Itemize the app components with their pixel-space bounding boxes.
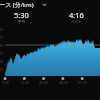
staticText: 53:20 (78, 80, 88, 85)
staticText: 6:30 (0, 59, 4, 64)
staticText: ベスト (71, 20, 83, 25)
staticText: 5:00 (0, 35, 4, 40)
staticText: 13:20 (20, 80, 30, 85)
button[interactable]: ペース (分/km) (0, 0, 100, 11)
staticText: 5:30 (14, 10, 29, 20)
staticText: 4:16 (69, 10, 84, 20)
staticText: 0:00 (2, 80, 10, 85)
staticText: 4:30 (0, 27, 4, 32)
staticText: 6:00 (0, 51, 4, 56)
staticText: 7:00 (0, 67, 4, 72)
staticText: 平均 (18, 20, 26, 25)
other: Change metric (41, 1, 48, 8)
staticText: 26:40 (39, 80, 49, 85)
staticText: 40:00 (59, 80, 69, 85)
staticText: ペース (分/km) (0, 1, 34, 9)
staticText: 5:30 (0, 43, 4, 48)
